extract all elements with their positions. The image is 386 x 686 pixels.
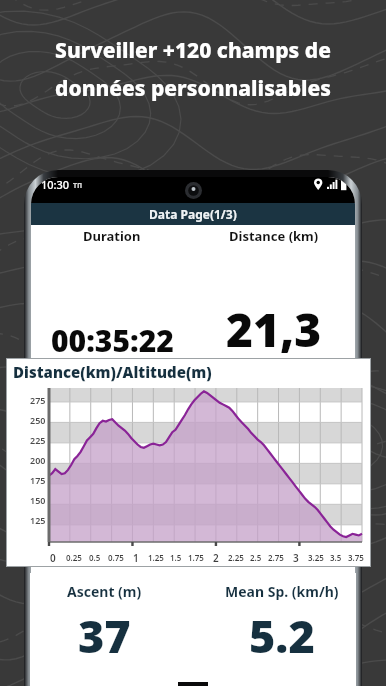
staticText: 0.5 <box>89 552 101 563</box>
staticText: 2.25 <box>228 552 244 563</box>
staticText: 2.75 <box>268 552 284 563</box>
staticText: 3.25 <box>308 552 324 563</box>
staticText: 0.25 <box>66 552 82 563</box>
staticText: 1 <box>133 551 139 565</box>
staticText: 200 <box>30 454 46 466</box>
staticText: 1.5 <box>170 552 182 563</box>
staticText: 10:30 <box>41 177 70 192</box>
staticText: Distance (km) <box>229 227 319 245</box>
other: Status icons <box>311 178 345 192</box>
staticText: Duration <box>83 227 141 245</box>
staticText: 3.75 <box>348 552 364 563</box>
staticText: données personnalisables <box>55 74 331 103</box>
staticText: 00:35:22 <box>51 320 174 361</box>
button[interactable]: Mean Sp. (km/h) <box>208 573 356 686</box>
staticText: Data Page(1/3) <box>149 206 237 222</box>
button[interactable]: Duration <box>31 225 193 361</box>
staticText: тп <box>73 179 83 190</box>
staticText: 175 <box>30 474 46 486</box>
staticText: 275 <box>30 394 46 406</box>
button[interactable]: Ascent (m) <box>30 573 178 686</box>
button[interactable]: Distance (km) <box>193 225 355 361</box>
staticText: 3 <box>293 551 299 565</box>
staticText: 3.5 <box>330 552 342 563</box>
staticText: Distance(km)/Altitude(m) <box>13 362 212 382</box>
staticText: 250 <box>30 414 46 426</box>
staticText: 37 <box>78 605 131 666</box>
staticText: 21,3 <box>226 298 322 361</box>
staticText: 5.2 <box>249 605 315 666</box>
staticText: Mean Sp. (km/h) <box>225 582 339 601</box>
staticText: Surveiller +120 champs de <box>55 36 331 65</box>
staticText: 125 <box>30 514 46 526</box>
staticText: 0.75 <box>108 552 124 563</box>
staticText: Ascent (m) <box>67 582 142 601</box>
staticText: 1.75 <box>188 552 204 563</box>
staticText: 150 <box>30 494 46 506</box>
staticText: 1.25 <box>148 552 164 563</box>
staticText: 225 <box>30 434 46 446</box>
button[interactable]: Data Page(1/3) <box>31 203 355 225</box>
button[interactable]: Distance(km)/Altitude(m) <box>7 359 370 566</box>
staticText: 2.5 <box>250 552 262 563</box>
staticText: 2 <box>213 551 219 565</box>
staticText: 0 <box>50 551 56 565</box>
